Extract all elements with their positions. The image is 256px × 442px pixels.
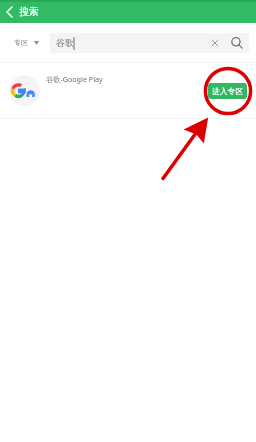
button[interactable]: 谷歌-Google Play (0, 62, 256, 119)
staticText: 谷歌-Google Play (46, 74, 103, 84)
button[interactable]: 进入专区 (208, 83, 247, 99)
button[interactable]: Clear search text (208, 36, 222, 50)
button[interactable]: 谷歌 (50, 33, 249, 53)
staticText: 搜索 (19, 5, 39, 18)
staticText: 专区 (14, 38, 28, 47)
button[interactable]: 专区 (14, 38, 39, 47)
staticText: 进入专区 (212, 86, 244, 96)
staticText: 谷歌 (56, 38, 74, 49)
button[interactable]: Back (0, 0, 18, 23)
button[interactable]: Search (229, 35, 245, 51)
